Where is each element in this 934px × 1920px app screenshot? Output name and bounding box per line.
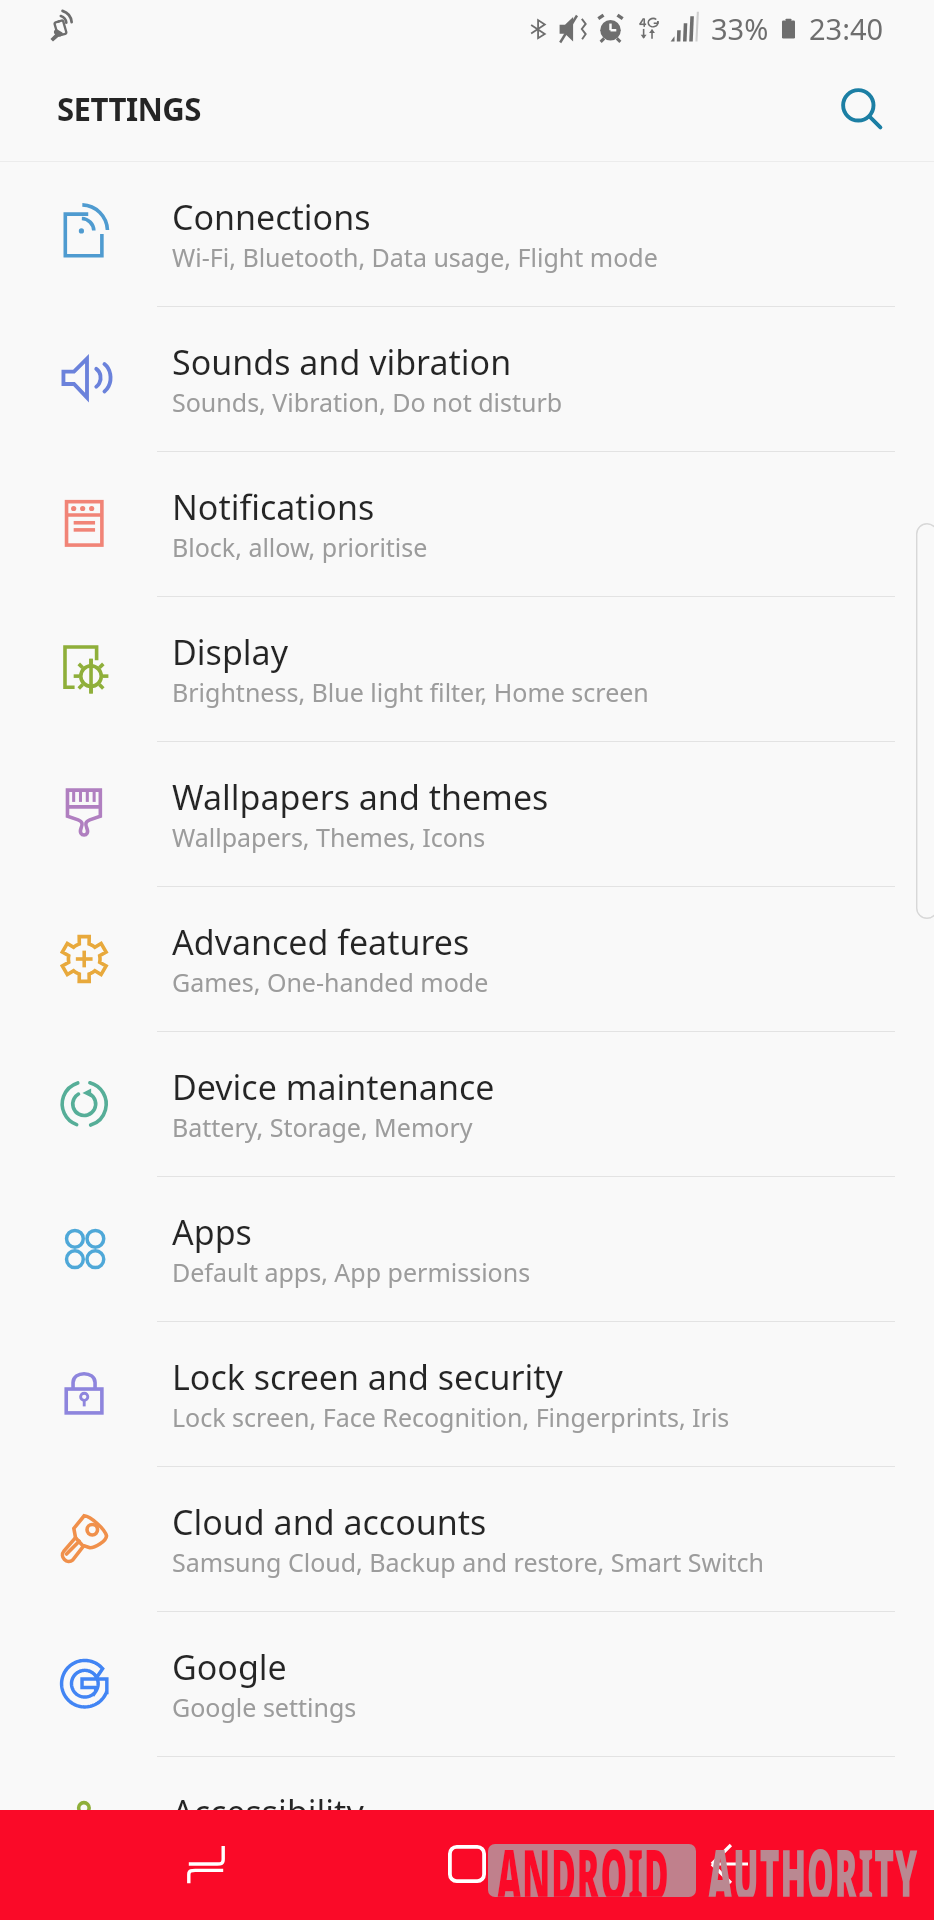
button[interactable]: Lock screen and security	[0, 1322, 934, 1466]
staticText: Games, One-handed mode	[172, 965, 489, 999]
staticText: Battery, Storage, Memory	[172, 1110, 473, 1144]
staticText: 23:40	[809, 9, 884, 48]
staticText: Vision, Hearing, Dexterity	[172, 1835, 470, 1869]
staticText: Sounds and vibration	[172, 339, 512, 385]
button[interactable]: Apps	[0, 1177, 934, 1321]
staticText: SETTINGS	[57, 86, 202, 131]
button[interactable]: Advanced features	[0, 887, 934, 1031]
staticText: AUTHORITY	[708, 1824, 918, 1897]
button[interactable]: Accessibility	[0, 1757, 934, 1901]
staticText: Apps	[172, 1209, 252, 1255]
staticText: Wallpapers, Themes, Icons	[172, 820, 486, 854]
staticText: Lock screen, Face Recognition, Fingerpri…	[172, 1400, 730, 1434]
staticText: Connections	[172, 194, 371, 240]
staticText: Brightness, Blue light filter, Home scre…	[172, 675, 649, 709]
staticText: Block, allow, prioritise	[172, 530, 428, 564]
button[interactable]: Cloud and accounts	[0, 1467, 934, 1611]
button[interactable]: Google	[0, 1612, 934, 1756]
button[interactable]: Home	[407, 1810, 527, 1920]
staticText: Display	[172, 629, 288, 675]
staticText: Default apps, App permissions	[172, 1255, 531, 1289]
staticText: Google	[172, 1644, 287, 1690]
button[interactable]: Device maintenance	[0, 1032, 934, 1176]
staticText: Device maintenance	[172, 1064, 495, 1110]
staticText: ANDROID	[497, 1824, 670, 1897]
staticText: Wallpapers and themes	[172, 774, 549, 820]
button[interactable]: Recent apps	[146, 1810, 266, 1920]
button[interactable]: Back	[669, 1810, 789, 1920]
staticText: Lock screen and security	[172, 1354, 563, 1400]
staticText: Wi-Fi, Bluetooth, Data usage, Flight mod…	[172, 240, 658, 274]
staticText: Advanced features	[172, 919, 470, 965]
button[interactable]: Wallpapers and themes	[0, 742, 934, 886]
button[interactable]: Connections	[0, 162, 934, 306]
staticText: Google settings	[172, 1690, 357, 1724]
button[interactable]: Sounds and vibration	[0, 307, 934, 451]
staticText: 33%	[711, 9, 769, 48]
staticText: Samsung Cloud, Backup and restore, Smart…	[172, 1545, 765, 1579]
staticText: Accessibility	[172, 1789, 364, 1835]
staticText: Notifications	[172, 484, 375, 530]
button[interactable]: Display	[0, 597, 934, 741]
staticText: Sounds, Vibration, Do not disturb	[172, 385, 563, 419]
staticText: Cloud and accounts	[172, 1499, 487, 1545]
button[interactable]: Notifications	[0, 452, 934, 596]
button[interactable]: Search	[826, 73, 898, 145]
